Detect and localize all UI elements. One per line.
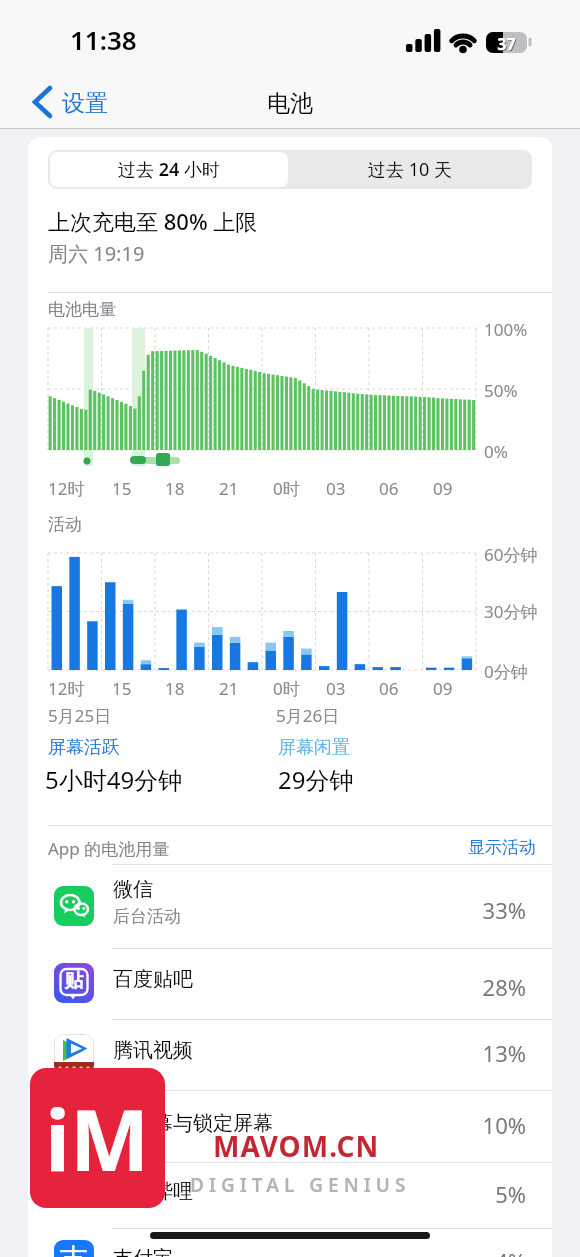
- staticText: MAVOM.CN: [213, 1127, 380, 1165]
- staticText: 支付宝: [113, 1246, 173, 1257]
- button[interactable]: [28, 1090, 552, 1162]
- staticText: 微信: [113, 877, 153, 902]
- staticText: 21: [219, 477, 239, 500]
- button[interactable]: [28, 1234, 552, 1257]
- button[interactable]: [28, 1162, 552, 1234]
- staticText: 设置: [62, 89, 108, 118]
- staticText: 12时: [48, 477, 85, 500]
- staticText: App 的电池用量: [48, 837, 170, 860]
- staticText: 4%: [426, 1246, 526, 1257]
- staticText: 5月26日: [276, 704, 340, 727]
- staticText: 10%: [426, 1110, 526, 1140]
- button[interactable]: [30, 84, 130, 120]
- staticText: 上次充电至 80% 上限: [48, 206, 258, 236]
- staticText: 0分钟: [484, 660, 528, 683]
- staticText: 电池电量: [48, 299, 116, 320]
- staticText: 0时: [273, 477, 300, 500]
- staticText: 50%: [484, 379, 518, 402]
- staticText: 0时: [273, 677, 300, 700]
- staticText: 15: [112, 477, 132, 500]
- button[interactable]: [28, 948, 552, 1019]
- staticText: 37: [486, 33, 527, 55]
- staticText: 贴: [54, 969, 94, 993]
- button[interactable]: 过去 24 小时: [50, 152, 288, 187]
- staticText: 06: [379, 677, 399, 700]
- staticText: 支: [54, 1241, 94, 1257]
- staticText: 主屏幕与锁定屏幕: [113, 1111, 273, 1136]
- staticText: 哔哩哔哩: [113, 1179, 193, 1204]
- staticText: 过去 10 天: [368, 157, 452, 182]
- staticText: 33%: [426, 895, 526, 925]
- staticText: 活动: [48, 514, 82, 535]
- staticText: 屏幕活跃: [48, 736, 120, 759]
- staticText: 百度贴吧: [113, 967, 193, 992]
- button[interactable]: 过去 10 天: [290, 152, 530, 187]
- staticText: 12时: [48, 677, 85, 700]
- staticText: 0%: [484, 440, 508, 463]
- staticText: iM: [45, 1081, 150, 1195]
- staticText: DIGITAL GENIUS: [190, 1172, 411, 1198]
- staticText: 30分钟: [484, 600, 538, 623]
- staticText: 09: [433, 477, 453, 500]
- staticText: 21: [219, 677, 239, 700]
- button[interactable]: [432, 833, 542, 859]
- button[interactable]: [28, 864, 552, 948]
- staticText: 28%: [426, 972, 526, 1002]
- staticText: 11:38: [70, 22, 137, 57]
- staticText: 29分钟: [278, 763, 354, 796]
- staticText: 周六 19:19: [48, 240, 145, 267]
- staticText: 5小时49分钟: [45, 763, 183, 796]
- staticText: 电池: [190, 89, 390, 118]
- button[interactable]: [28, 1019, 552, 1090]
- staticText: 显示活动: [442, 837, 536, 858]
- staticText: 腾讯视频: [113, 1038, 193, 1063]
- staticText: 18: [165, 677, 185, 700]
- staticText: 5月25日: [48, 704, 112, 727]
- staticText: 60分钟: [484, 543, 538, 566]
- staticText: 屏幕闲置: [278, 736, 350, 759]
- staticText: 03: [326, 477, 346, 500]
- staticText: 03: [326, 677, 346, 700]
- staticText: 过去 24 小时: [118, 157, 220, 182]
- staticText: 09: [433, 677, 453, 700]
- staticText: 5%: [426, 1179, 526, 1209]
- staticText: 37: [487, 34, 528, 56]
- staticText: 15: [112, 677, 132, 700]
- staticText: 后台活动: [113, 906, 181, 927]
- staticText: 100%: [484, 318, 528, 341]
- staticText: 18: [165, 477, 185, 500]
- staticText: 13%: [426, 1038, 526, 1068]
- staticText: 06: [379, 477, 399, 500]
